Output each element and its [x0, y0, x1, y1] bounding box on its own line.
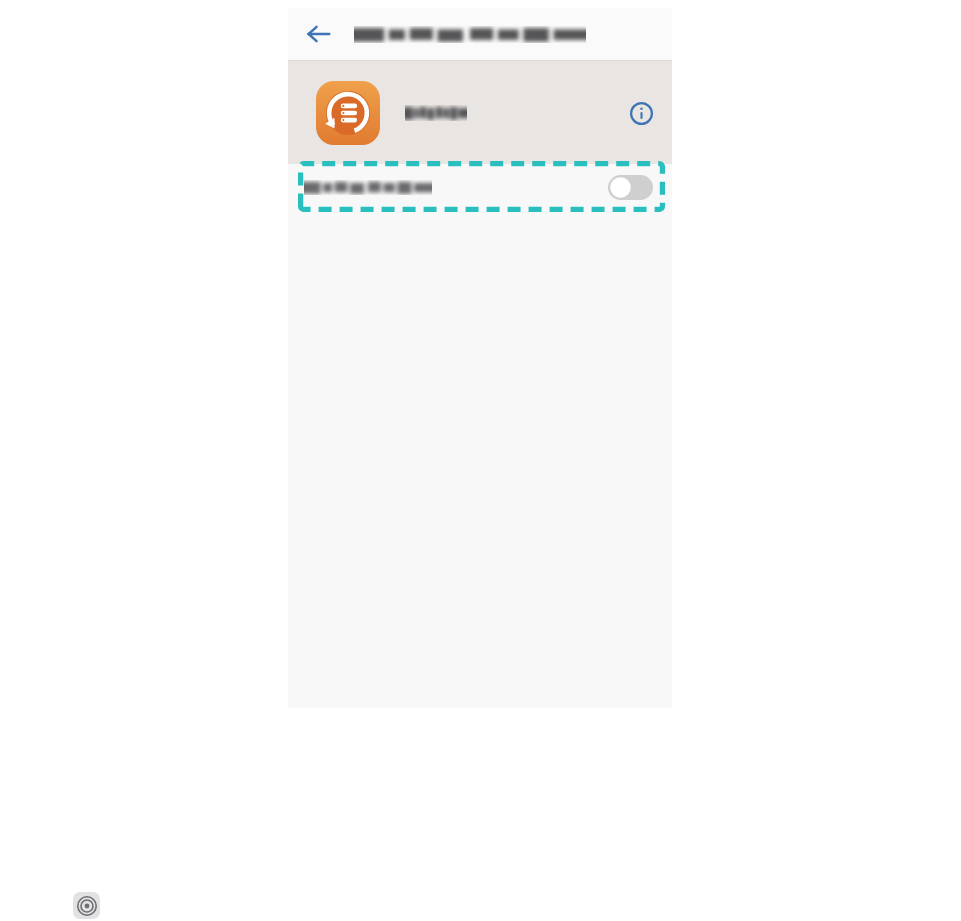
button[interactable]: App info — [621, 93, 661, 133]
button[interactable]: Screenshot — [73, 892, 100, 919]
button[interactable]: Allow notifications toggle — [288, 164, 672, 211]
button[interactable]: Allow notifications toggle — [608, 175, 653, 200]
button[interactable]: App info — [288, 61, 672, 164]
button[interactable]: Back — [296, 12, 340, 56]
